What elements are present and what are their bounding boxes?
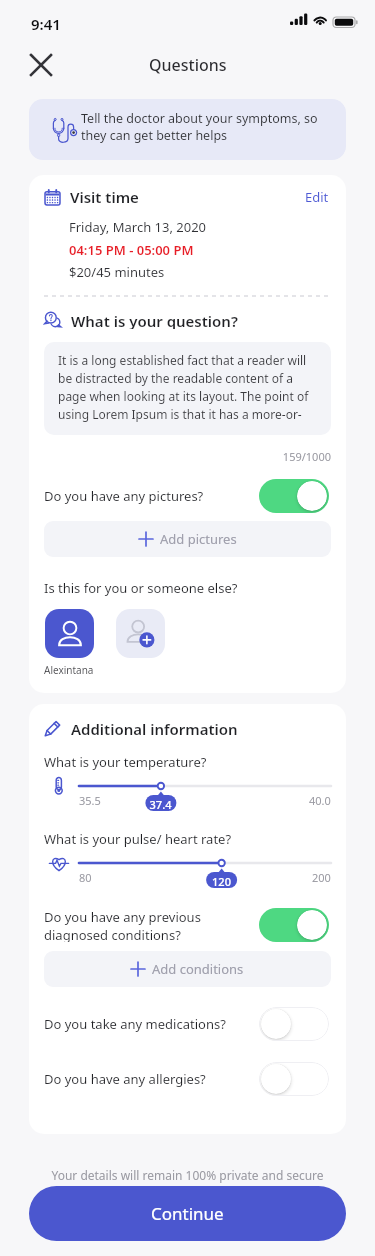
button[interactable]: Continue [29,1186,346,1241]
button[interactable]: Close [21,45,61,85]
button[interactable]: Add conditions [44,951,331,987]
staticText: Alexintana [44,663,94,677]
staticText: Your details will remain 100% private an… [0,1167,375,1183]
staticText: What is your temperature? [44,753,207,771]
staticText: Visit time [70,187,139,207]
button[interactable]: Alexintana [45,609,94,658]
staticText: Add conditions [152,960,244,978]
staticText: 9:41 [31,14,61,34]
staticText: 40.0 [309,793,331,808]
staticText: Additional information [71,719,238,737]
button[interactable]: Toggle off [259,1062,329,1096]
staticText: Do you have any allergies? [44,1070,206,1088]
staticText: 200 [312,870,331,885]
staticText: 120 [206,874,237,889]
staticText: 37.4 [145,797,176,812]
staticText: Friday, March 13, 2020 [69,218,207,236]
staticText: What is your pulse/ heart rate? [44,830,232,848]
staticText: Tell the doctor about your symptoms, so … [81,110,332,143]
staticText: 35.5 [79,793,101,808]
staticText: Edit [305,188,329,206]
button[interactable]: Toggle off [259,1007,329,1041]
staticText: 04:15 PM - 05:00 PM [69,241,194,259]
button[interactable]: Add pictures [44,521,331,557]
staticText: What is your question? [71,311,238,329]
staticText: Do you take any medications? [44,1015,226,1033]
staticText: 80 [79,870,92,885]
staticText: It is a long established fact that a rea… [58,352,317,423]
button[interactable]: Edit [303,184,331,210]
staticText: Do you have any pictures? [44,487,204,505]
button[interactable]: Add person [116,609,165,658]
staticText: Continue [151,1202,224,1225]
staticText: Add pictures [160,530,237,548]
button[interactable]: Toggle on [259,479,329,513]
staticText: Do you have any previous diagnosed condi… [44,908,201,942]
staticText: 159/1000 [44,449,331,464]
staticText: Questions [149,54,227,76]
staticText: Is this for you or someone else? [44,579,238,597]
button[interactable]: Toggle on [259,908,329,942]
staticText: $20/45 minutes [69,263,165,281]
